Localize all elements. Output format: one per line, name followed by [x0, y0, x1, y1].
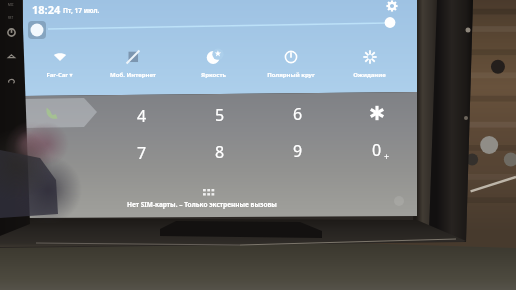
staticText: Пт, 17 июл. — [63, 6, 100, 15]
button[interactable]: Settings — [386, 0, 398, 12]
button[interactable]: Яркость — [175, 50, 251, 82]
staticText: Моб. Интернет — [110, 71, 156, 79]
staticText: 4 — [137, 105, 147, 127]
staticText: 8 — [215, 141, 225, 163]
staticText: Ожидание — [353, 71, 386, 79]
button[interactable]: Моб. Интернет — [95, 50, 171, 82]
staticText: MIC — [8, 3, 14, 7]
staticText: Far-Car ▾ — [46, 71, 73, 79]
button[interactable]: 8 — [201, 138, 239, 166]
staticText: 18:24 — [32, 2, 61, 17]
staticText: + — [384, 150, 390, 162]
button[interactable]: Back — [7, 77, 16, 86]
button[interactable]: Star key — [364, 100, 390, 126]
staticText: Полярный круг — [267, 71, 315, 79]
button[interactable]: 6 — [279, 100, 317, 128]
button[interactable]: 7 — [123, 139, 161, 167]
button[interactable]: Полярный круг — [253, 50, 329, 82]
staticText: Нет SIM-карты. – Только экстренные вызов… — [127, 200, 277, 209]
staticText: 0 — [372, 139, 382, 161]
staticText: 6 — [293, 103, 303, 125]
button[interactable]: Auto brightness — [28, 21, 46, 39]
button[interactable]: 5 — [201, 101, 239, 129]
staticText: 5 — [215, 104, 225, 126]
staticText: 9 — [293, 140, 303, 162]
button[interactable]: 0 — [358, 136, 396, 164]
staticText: Яркость — [201, 71, 226, 79]
button[interactable]: Ожидание — [331, 50, 407, 82]
button[interactable]: Far-Car ▾ — [21, 50, 97, 82]
staticText: RST — [8, 16, 14, 20]
button[interactable]: 9 — [279, 137, 317, 165]
button[interactable]: Power — [7, 28, 16, 37]
staticText: 7 — [137, 142, 147, 164]
button[interactable]: Home — [7, 52, 16, 61]
button[interactable]: 4 — [123, 102, 161, 130]
